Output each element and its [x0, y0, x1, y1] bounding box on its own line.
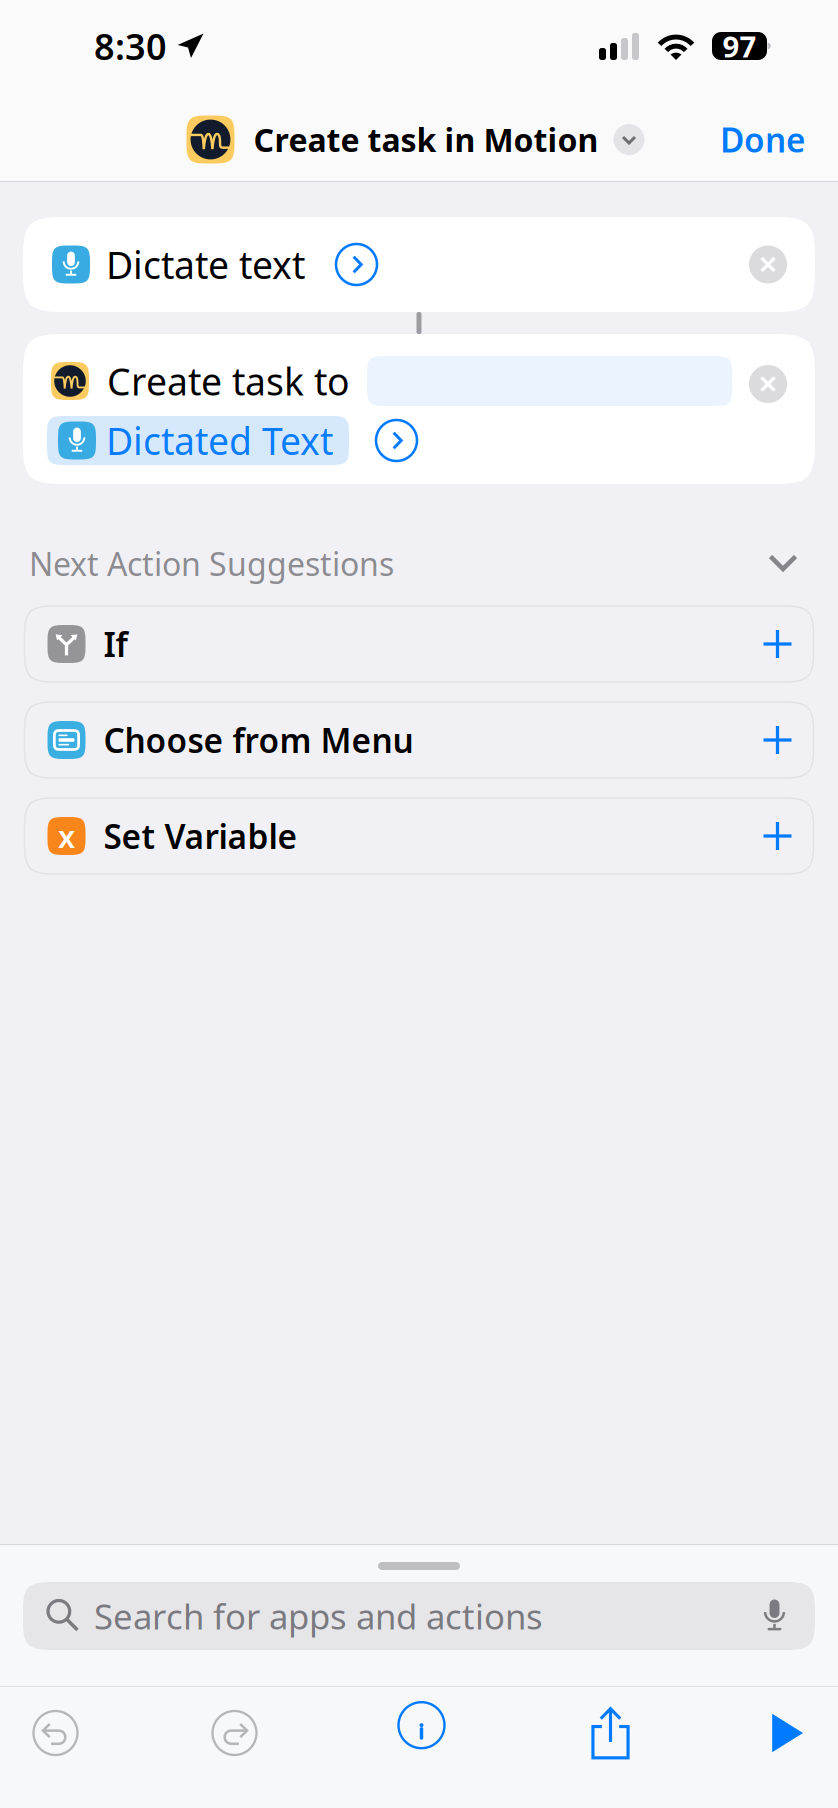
staticText: Create task in Motion — [253, 118, 598, 161]
staticText: Create task to — [107, 356, 350, 406]
staticText: Dictated Text — [106, 416, 333, 465]
staticText: Done — [720, 117, 806, 162]
button[interactable]: Details — [358, 1687, 485, 1779]
staticText: x — [58, 816, 75, 856]
button[interactable]: Search for apps and actions — [23, 1582, 815, 1650]
button[interactable]: Choose from Menu — [24, 702, 813, 778]
staticText: 97 — [722, 26, 756, 65]
staticText: If — [103, 622, 127, 666]
button[interactable]: Share — [485, 1687, 736, 1779]
button[interactable]: Run shortcut — [736, 1687, 838, 1779]
button[interactable]: Undo — [0, 1687, 111, 1779]
button[interactable]: Redo — [111, 1687, 358, 1779]
button[interactable]: If — [24, 606, 813, 682]
button[interactable]: Done — [720, 91, 838, 180]
button[interactable]: Dictate text — [23, 217, 815, 312]
staticText: Dictate text — [106, 240, 305, 289]
button[interactable]: Create task in Motion — [186, 91, 644, 180]
staticText: Choose from Menu — [103, 718, 413, 762]
button[interactable]: x — [24, 798, 813, 874]
staticText: Set Variable — [103, 814, 297, 858]
staticText: 8:30 — [94, 22, 167, 70]
button[interactable]: Create task to — [23, 334, 815, 484]
staticText: Next Action Suggestions — [29, 542, 394, 585]
staticText: Search for apps and actions — [94, 1593, 543, 1639]
